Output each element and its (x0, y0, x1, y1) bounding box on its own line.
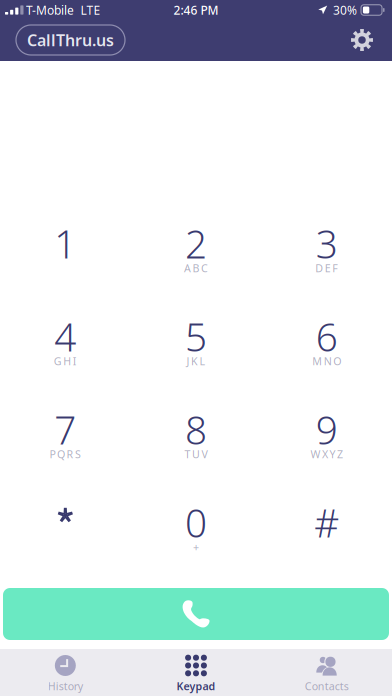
button[interactable]: 8 (131, 383, 261, 476)
staticText: MNO (312, 354, 341, 368)
staticText: JKL (186, 354, 205, 368)
button[interactable]: CallThru.us (16, 25, 125, 55)
staticText: TUV (184, 447, 207, 461)
staticText: Contacts (305, 679, 349, 693)
staticText: 3 (316, 218, 338, 269)
button[interactable]: 3 (261, 197, 392, 290)
staticText: 2 (185, 218, 207, 269)
button[interactable]: 2 (131, 197, 261, 290)
button[interactable]: Keypad (131, 649, 261, 696)
staticText: T-Mobile (26, 2, 74, 18)
staticText: GHI (54, 354, 77, 368)
staticText: DEF (315, 261, 338, 275)
staticText: 7 (54, 404, 76, 455)
staticText: ABC (184, 261, 208, 275)
staticText: 2:46 PM (173, 2, 218, 18)
button[interactable] (0, 476, 131, 569)
staticText: + (193, 540, 199, 554)
staticText: History (48, 679, 83, 693)
staticText: CallThru.us (27, 29, 114, 51)
staticText: # (314, 497, 339, 548)
staticText: PQRS (50, 447, 81, 461)
button[interactable]: 5 (131, 290, 261, 383)
staticText: 0 (185, 497, 207, 548)
button[interactable]: Contacts (261, 649, 392, 696)
button[interactable]: Call (3, 588, 389, 640)
staticText: 9 (316, 404, 338, 455)
staticText: LTE (80, 2, 100, 18)
button[interactable]: 7 (0, 383, 131, 476)
button[interactable]: 6 (261, 290, 392, 383)
staticText: WXYZ (310, 447, 343, 461)
staticText: 30% (333, 2, 357, 18)
button[interactable]: 9 (261, 383, 392, 476)
button[interactable]: History (0, 649, 131, 696)
button[interactable]: 0 (131, 476, 261, 569)
staticText: 8 (185, 404, 207, 455)
button[interactable]: 4 (0, 290, 131, 383)
staticText: 4 (54, 311, 76, 362)
staticText: 5 (185, 311, 207, 362)
staticText: 1 (54, 218, 76, 269)
button[interactable]: Settings (340, 19, 384, 60)
button[interactable]: 1 (0, 197, 131, 290)
staticText: Keypad (176, 679, 215, 693)
button[interactable]: # (261, 476, 392, 569)
staticText: 6 (316, 311, 338, 362)
